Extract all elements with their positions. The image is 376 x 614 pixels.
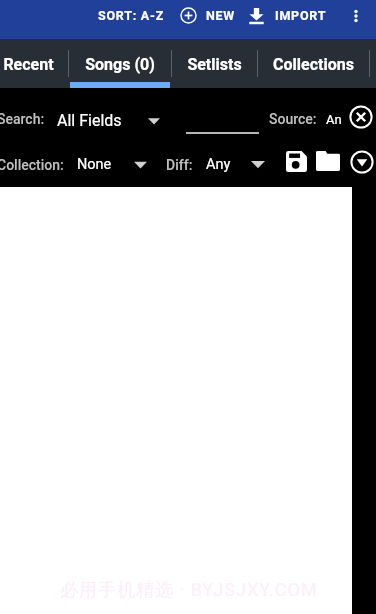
button[interactable]: Open folder (313, 146, 343, 176)
staticText: Source: (269, 111, 317, 127)
staticText: An (326, 112, 342, 127)
staticText: SORT: A-Z (98, 8, 164, 23)
staticText: Collections (273, 55, 354, 74)
button[interactable]: Collections (258, 39, 369, 88)
staticText: Diff: (166, 157, 193, 173)
staticText: Any (206, 156, 231, 173)
button[interactable]: NEW (180, 3, 236, 28)
button[interactable]: SORT: A-Z (92, 2, 170, 29)
staticText: Songs (0) (85, 55, 155, 74)
button[interactable]: Expand filters (348, 148, 375, 175)
button[interactable]: Setlists (172, 39, 257, 88)
staticText: 必用手机精选 · BYJSJXY.COM (60, 579, 318, 602)
button[interactable]: Clear source filter (347, 103, 375, 131)
staticText: Setlists (187, 55, 242, 74)
button[interactable]: Songs (0) (69, 39, 171, 88)
staticText: Search: (0, 111, 45, 127)
staticText: None (77, 156, 112, 173)
staticText: IMPORT (275, 8, 327, 23)
button[interactable]: All Fields (57, 102, 160, 138)
button[interactable]: Recent (0, 39, 68, 88)
staticText: NEW (206, 8, 236, 23)
staticText: All Fields (57, 111, 122, 130)
button[interactable]: Save (281, 146, 311, 176)
button[interactable]: More options (340, 0, 372, 32)
button[interactable]: None (77, 148, 147, 180)
button[interactable]: Any (206, 148, 265, 180)
staticText: Recent (3, 55, 54, 74)
button[interactable]: IMPORT (247, 2, 327, 29)
staticText: Collection: (0, 157, 64, 173)
